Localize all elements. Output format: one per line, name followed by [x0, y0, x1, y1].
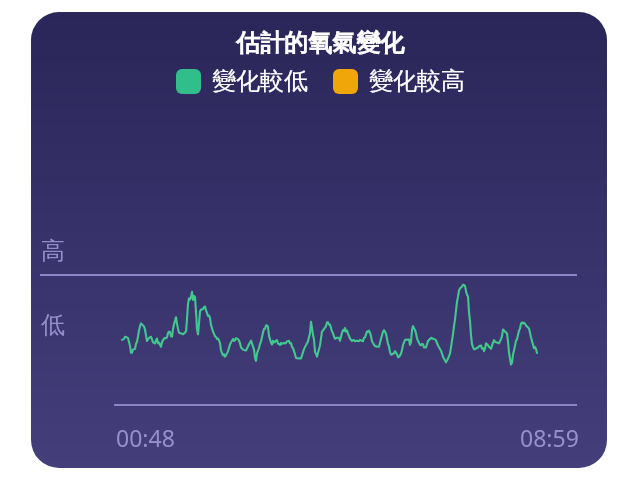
- staticText: 00:48: [116, 422, 175, 453]
- staticText: 變化較高: [369, 66, 465, 96]
- staticText: 高: [41, 236, 65, 266]
- staticText: 08:59: [520, 422, 579, 453]
- button[interactable]: 估計的氧氣變化: [31, 12, 607, 468]
- staticText: 估計的氧氣變化: [236, 28, 404, 58]
- staticText: 低: [41, 310, 65, 340]
- staticText: 變化較低: [212, 66, 308, 96]
- button[interactable]: 變化較低: [176, 66, 308, 96]
- button[interactable]: 變化較高: [333, 66, 465, 96]
